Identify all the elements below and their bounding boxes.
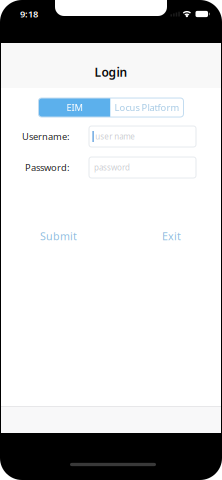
button[interactable]: Exit bbox=[158, 225, 185, 247]
staticText: Password: bbox=[25, 161, 70, 174]
staticText: Username: bbox=[22, 130, 70, 143]
staticText: Exit bbox=[162, 229, 181, 243]
staticText: password bbox=[94, 162, 130, 173]
button[interactable]: password bbox=[89, 157, 196, 178]
button[interactable]: Submit bbox=[36, 225, 81, 247]
staticText: Submit bbox=[40, 229, 77, 243]
button[interactable]: user name bbox=[89, 126, 196, 147]
staticText: Locus Platform bbox=[114, 101, 179, 114]
button[interactable]: EIM bbox=[38, 98, 110, 117]
button[interactable]: Locus Platform bbox=[110, 98, 183, 117]
staticText: Login bbox=[94, 64, 127, 80]
staticText: user name bbox=[95, 131, 135, 142]
staticText: 9:18 bbox=[20, 8, 38, 20]
staticText: EIM bbox=[66, 101, 82, 114]
